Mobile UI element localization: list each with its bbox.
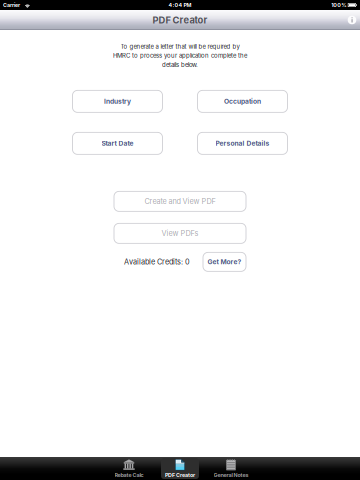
button[interactable]: Info [344, 10, 360, 30]
button[interactable]: Create and View PDF [114, 191, 246, 211]
staticText: View PDFs [161, 229, 198, 238]
staticText: Personal Details [215, 139, 269, 147]
button[interactable]: Get More? [203, 252, 246, 271]
staticText: General Notes [213, 472, 248, 478]
button[interactable]: View PDFs [114, 223, 246, 243]
staticText: Carrier [3, 2, 20, 8]
staticText: Start Date [101, 139, 133, 147]
staticText: Occupation [224, 97, 261, 105]
staticText: 100% [331, 2, 346, 8]
button[interactable]: PDF Creator [161, 457, 199, 480]
button[interactable]: Rebate Calc [110, 457, 148, 480]
staticText: HMRC to process your application complet… [113, 52, 247, 59]
staticText: 4:04 PM [168, 2, 191, 8]
staticText: PDF Creator [152, 14, 207, 26]
staticText: Industry [104, 97, 131, 105]
staticText: Create and View PDF [144, 197, 215, 206]
staticText: Rebate Calc [114, 472, 143, 478]
button[interactable]: Industry [72, 90, 162, 112]
button[interactable]: Occupation [197, 90, 287, 112]
staticText: Available Credits: 0 [124, 257, 190, 266]
button[interactable]: General Notes [212, 457, 250, 480]
staticText: Get More? [207, 258, 241, 266]
staticText: To generate a letter that will be requir… [120, 43, 239, 50]
button[interactable]: Start Date [72, 132, 162, 154]
staticText: PDF Creator [165, 472, 195, 478]
staticText: details below. [162, 61, 198, 68]
button[interactable]: Personal Details [197, 132, 287, 154]
